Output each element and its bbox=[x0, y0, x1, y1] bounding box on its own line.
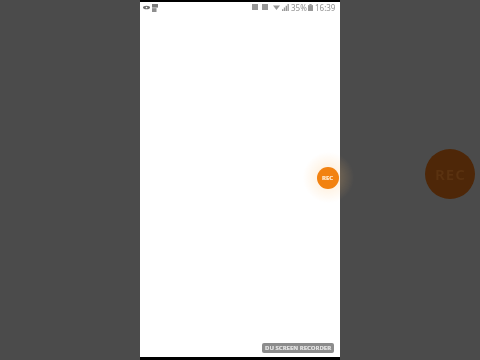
staticText: REC bbox=[322, 174, 334, 182]
staticText: DU SCREEN RECORDER bbox=[265, 344, 332, 352]
staticText: 16:39 bbox=[315, 2, 336, 12]
button[interactable]: Record bbox=[317, 167, 339, 189]
staticText: 35% bbox=[291, 2, 307, 12]
staticText: REC bbox=[435, 164, 466, 184]
button[interactable]: Record overlay bbox=[425, 149, 475, 199]
